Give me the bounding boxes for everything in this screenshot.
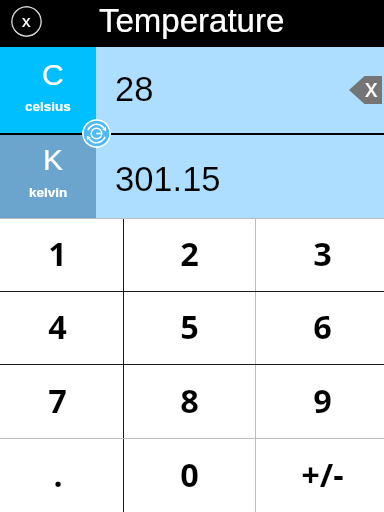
button[interactable]: 5 bbox=[124, 292, 255, 364]
staticText: Temperature bbox=[99, 2, 285, 39]
button[interactable]: 0 bbox=[124, 439, 255, 512]
staticText: kelvin bbox=[29, 185, 68, 200]
staticText: 0 bbox=[180, 452, 199, 496]
staticText: 301.15 bbox=[115, 160, 221, 199]
staticText: 6 bbox=[313, 304, 332, 348]
staticText: 8 bbox=[180, 378, 199, 422]
staticText: K bbox=[43, 143, 64, 177]
button[interactable]: Close bbox=[11, 6, 42, 37]
staticText: x bbox=[365, 74, 378, 102]
staticText: 1 bbox=[48, 231, 67, 275]
button[interactable]: Swap units bbox=[82, 119, 111, 148]
button[interactable]: 9 bbox=[256, 365, 384, 438]
button[interactable]: 28 bbox=[96, 47, 384, 133]
button[interactable]: 3 bbox=[256, 219, 384, 291]
staticText: 9 bbox=[313, 378, 332, 422]
button[interactable]: 4 bbox=[0, 292, 123, 364]
button[interactable]: 8 bbox=[124, 365, 255, 438]
button[interactable]: 6 bbox=[256, 292, 384, 364]
staticText: 5 bbox=[180, 304, 199, 348]
button[interactable]: K bbox=[0, 135, 96, 218]
staticText: 3 bbox=[313, 231, 332, 275]
button[interactable]: Backspace bbox=[349, 76, 382, 104]
button[interactable]: 1 bbox=[0, 219, 123, 291]
staticText: x bbox=[22, 12, 31, 31]
button[interactable]: C bbox=[0, 47, 96, 133]
button[interactable]: 2 bbox=[124, 219, 255, 291]
button[interactable]: 301.15 bbox=[96, 135, 384, 218]
staticText: . bbox=[53, 452, 63, 496]
staticText: 2 bbox=[180, 231, 199, 275]
staticText: 28 bbox=[115, 70, 154, 109]
staticText: 7 bbox=[48, 378, 67, 422]
staticText: celsius bbox=[25, 99, 71, 114]
staticText: +/- bbox=[301, 452, 344, 496]
button[interactable]: . bbox=[0, 439, 123, 512]
button[interactable]: +/- bbox=[256, 439, 384, 512]
staticText: C bbox=[42, 58, 64, 92]
staticText: 4 bbox=[48, 304, 67, 348]
button[interactable]: 7 bbox=[0, 365, 123, 438]
